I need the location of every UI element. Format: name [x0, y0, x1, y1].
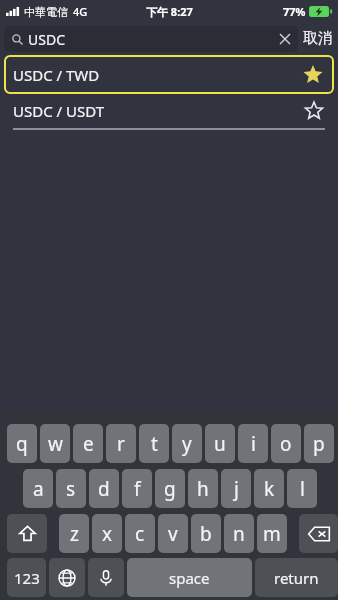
staticText: m [263, 521, 281, 547]
staticText: d [98, 476, 110, 502]
staticText: x [102, 521, 113, 547]
staticText: return [274, 568, 319, 588]
button[interactable]: USDC / TWD [4, 55, 334, 94]
button[interactable]: Favorite USDC USDT [302, 99, 326, 123]
button[interactable]: m [257, 514, 287, 553]
staticText: 123 [14, 568, 40, 588]
button[interactable]: Change keyboard [49, 558, 85, 597]
staticText: w [48, 431, 63, 457]
button[interactable]: USDC [4, 26, 298, 52]
staticText: p [313, 431, 325, 457]
button[interactable]: v [158, 514, 188, 553]
button[interactable]: d [89, 469, 119, 508]
staticText: l [300, 476, 305, 502]
staticText: k [264, 476, 275, 502]
button[interactable]: l [287, 469, 317, 508]
button[interactable]: return [255, 558, 338, 597]
button[interactable]: w [40, 424, 70, 463]
button[interactable]: t [139, 424, 169, 463]
button[interactable]: Clear search [272, 26, 298, 52]
button[interactable]: space [127, 558, 252, 597]
button[interactable]: a [23, 469, 53, 508]
button[interactable]: s [56, 469, 86, 508]
staticText: a [33, 476, 44, 502]
staticText: y [182, 431, 192, 457]
staticText: i [251, 431, 256, 457]
button[interactable]: u [205, 424, 235, 463]
button[interactable]: c [125, 514, 155, 553]
staticText: s [66, 476, 76, 502]
button[interactable]: Backspace [299, 514, 338, 553]
staticText: q [16, 431, 28, 457]
staticText: 4G [73, 4, 88, 19]
staticText: 取消 [303, 29, 333, 48]
staticText: r [117, 431, 125, 457]
staticText: 77% [283, 4, 306, 19]
staticText: u [214, 431, 226, 457]
button[interactable]: o [271, 424, 301, 463]
button[interactable]: 123 [7, 558, 46, 597]
staticText: USDC / USDT [13, 101, 105, 121]
button[interactable]: h [188, 469, 218, 508]
button[interactable]: n [224, 514, 254, 553]
staticText: h [197, 476, 209, 502]
staticText: e [83, 431, 94, 457]
button[interactable]: e [73, 424, 103, 463]
staticText: USDC [28, 30, 65, 49]
staticText: o [280, 431, 292, 457]
button[interactable]: r [106, 424, 136, 463]
button[interactable]: g [155, 469, 185, 508]
staticText: g [164, 476, 176, 502]
button[interactable]: f [122, 469, 152, 508]
staticText: c [135, 521, 145, 547]
button[interactable]: USDC / USDT [0, 94, 338, 128]
staticText: z [70, 521, 79, 547]
staticText: b [200, 521, 212, 547]
staticText: v [168, 521, 178, 547]
button[interactable]: j [221, 469, 251, 508]
staticText: n [233, 521, 245, 547]
button[interactable]: z [59, 514, 89, 553]
button[interactable]: Dictation [88, 558, 124, 597]
staticText: 中華電信 [24, 5, 68, 19]
button[interactable]: Unfavorite USDC TWD [300, 62, 326, 88]
button[interactable]: i [238, 424, 268, 463]
staticText: 下午 8:27 [146, 4, 193, 19]
button[interactable]: q [7, 424, 37, 463]
button[interactable]: 取消 [303, 29, 333, 48]
button[interactable]: k [254, 469, 284, 508]
staticText: space [169, 568, 210, 588]
button[interactable]: b [191, 514, 221, 553]
staticText: t [151, 431, 158, 457]
staticText: f [134, 476, 141, 502]
button[interactable]: Shift [7, 514, 47, 553]
button[interactable]: y [172, 424, 202, 463]
button[interactable]: x [92, 514, 122, 553]
staticText: USDC / TWD [13, 65, 100, 85]
staticText: j [234, 476, 239, 502]
button[interactable]: p [304, 424, 334, 463]
